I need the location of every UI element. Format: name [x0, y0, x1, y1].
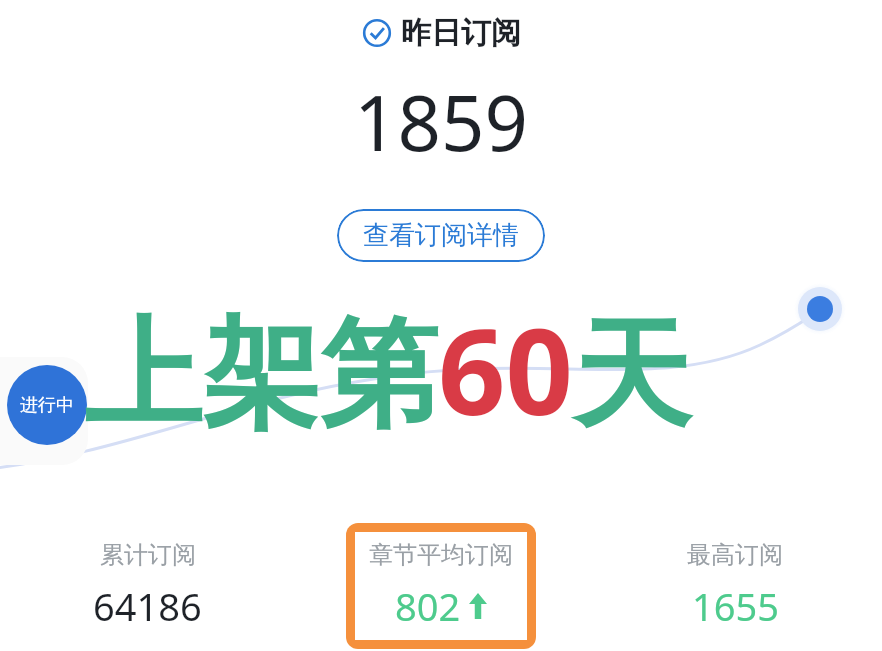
- staticText: 上架第60天: [84, 289, 691, 450]
- staticText: 1859: [354, 70, 528, 174]
- staticText: 章节平均订阅: [369, 540, 513, 570]
- other: Completed: [362, 18, 392, 48]
- button[interactable]: 章节平均订阅: [346, 523, 536, 649]
- button[interactable]: 最高订阅: [673, 532, 797, 640]
- staticText: 64186: [93, 580, 202, 632]
- staticText: 1655: [692, 580, 779, 632]
- button[interactable]: 进行中: [7, 365, 87, 445]
- staticText: 进行中: [20, 394, 74, 417]
- button[interactable]: 查看订阅详情: [337, 209, 545, 262]
- staticText: 累计订阅: [100, 540, 196, 570]
- staticText: 最高订阅: [687, 540, 783, 570]
- staticText: 查看订阅详情: [363, 219, 519, 252]
- button[interactable]: Completed: [362, 14, 521, 52]
- button[interactable]: 累计订阅: [79, 532, 216, 640]
- staticText: 802: [395, 580, 461, 632]
- staticText: 昨日订阅: [401, 14, 521, 52]
